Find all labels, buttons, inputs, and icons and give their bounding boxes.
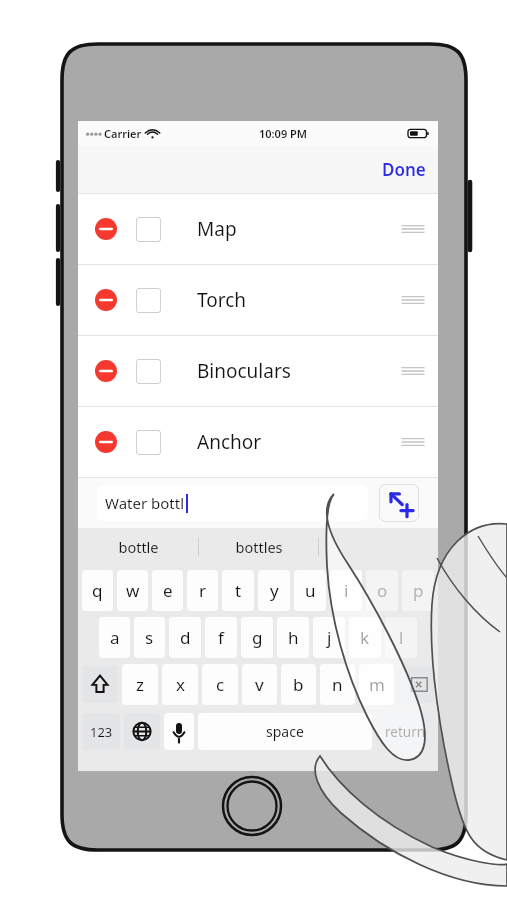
staticText: c (216, 673, 225, 696)
button[interactable]: c (202, 664, 238, 705)
button[interactable]: space (198, 713, 372, 750)
staticText: Binoculars (197, 358, 291, 384)
button[interactable]: x (162, 664, 198, 705)
staticText: x (176, 673, 185, 696)
button[interactable]: s (134, 617, 165, 658)
staticText: Carrier (104, 126, 142, 141)
button[interactable]: Add item (379, 484, 419, 522)
staticText: i (344, 579, 349, 602)
staticText: k (360, 626, 370, 649)
button[interactable]: e (152, 570, 183, 611)
button[interactable]: Shift (82, 666, 118, 703)
button[interactable]: Toggle Binoculars (136, 359, 161, 384)
button[interactable] (319, 528, 438, 566)
staticText: m (369, 673, 385, 696)
button[interactable]: bottle (78, 528, 198, 566)
button[interactable]: j (313, 617, 345, 658)
staticText: h (288, 626, 299, 649)
staticText: Torch (197, 287, 247, 313)
button[interactable]: bottles (199, 528, 318, 566)
button[interactable]: 123 (82, 713, 120, 750)
button[interactable]: Toggle Torch (136, 288, 161, 313)
button[interactable]: Delete Map (78, 194, 438, 264)
staticText: b (293, 673, 304, 696)
staticText: f (218, 626, 224, 649)
staticText: space (266, 722, 304, 741)
staticText: t (235, 579, 242, 602)
button[interactable]: Reorder Torch (402, 293, 424, 307)
button[interactable]: g (241, 617, 273, 658)
button[interactable]: u (294, 570, 326, 611)
button[interactable]: Backspace (398, 666, 434, 703)
button[interactable]: a (99, 617, 130, 658)
button[interactable]: l (385, 617, 417, 658)
staticText: q (92, 579, 103, 602)
button[interactable]: n (320, 664, 355, 705)
button[interactable]: Delete Anchor (95, 431, 117, 453)
staticText: l (399, 626, 404, 649)
staticText: r (199, 579, 207, 602)
staticText: bottles (235, 537, 283, 557)
staticText: Water bottl (105, 493, 185, 513)
staticText: z (136, 673, 144, 696)
button[interactable]: r (187, 570, 218, 611)
staticText: v (255, 673, 264, 696)
button[interactable]: q (82, 570, 113, 611)
button[interactable]: Toggle Anchor (136, 430, 161, 455)
staticText: 10:09 PM (259, 126, 308, 141)
staticText: a (110, 626, 120, 649)
staticText: p (413, 579, 424, 602)
button[interactable]: i (330, 570, 362, 611)
staticText: Map (197, 216, 237, 242)
button[interactable]: Delete Torch (95, 289, 117, 311)
staticText: g (252, 626, 263, 649)
staticText: 123 (90, 723, 113, 741)
staticText: e (163, 579, 173, 602)
button[interactable]: y (258, 570, 290, 611)
staticText: d (180, 626, 191, 649)
button[interactable]: Reorder Binoculars (402, 364, 424, 378)
button[interactable]: Dictate (164, 713, 194, 750)
button[interactable]: w (117, 570, 148, 611)
staticText: y (270, 579, 279, 602)
button[interactable]: Delete Binoculars (78, 336, 438, 406)
button[interactable]: f (205, 617, 237, 658)
button[interactable]: Toggle Map (136, 217, 161, 242)
button[interactable]: Water bottl (97, 485, 368, 521)
button[interactable]: Delete Torch (78, 265, 438, 335)
staticText: w (126, 579, 140, 602)
button[interactable]: Delete Anchor (78, 407, 438, 477)
staticText: o (377, 579, 388, 602)
button[interactable]: p (402, 570, 434, 611)
button[interactable]: o (366, 570, 398, 611)
button[interactable]: h (277, 617, 309, 658)
button[interactable]: Switch keyboard (124, 713, 160, 750)
staticText: return (385, 723, 426, 741)
staticText: Done (382, 158, 426, 181)
staticText: n (332, 673, 343, 696)
button[interactable]: b (281, 664, 316, 705)
button[interactable]: Delete Binoculars (95, 360, 117, 382)
button[interactable]: m (359, 664, 394, 705)
staticText: bottle (118, 537, 159, 557)
button[interactable]: k (349, 617, 381, 658)
button[interactable]: return (376, 713, 434, 750)
staticText: Anchor (197, 429, 262, 455)
button[interactable]: Reorder Map (402, 222, 424, 236)
button[interactable]: v (242, 664, 277, 705)
button[interactable]: t (222, 570, 254, 611)
button[interactable]: Reorder Anchor (402, 435, 424, 449)
button[interactable]: d (169, 617, 201, 658)
button[interactable]: z (122, 664, 158, 705)
button[interactable]: Delete Map (95, 218, 117, 240)
staticText: j (327, 626, 332, 649)
staticText: s (145, 626, 154, 649)
staticText: u (305, 579, 316, 602)
button[interactable]: Done (370, 150, 438, 189)
